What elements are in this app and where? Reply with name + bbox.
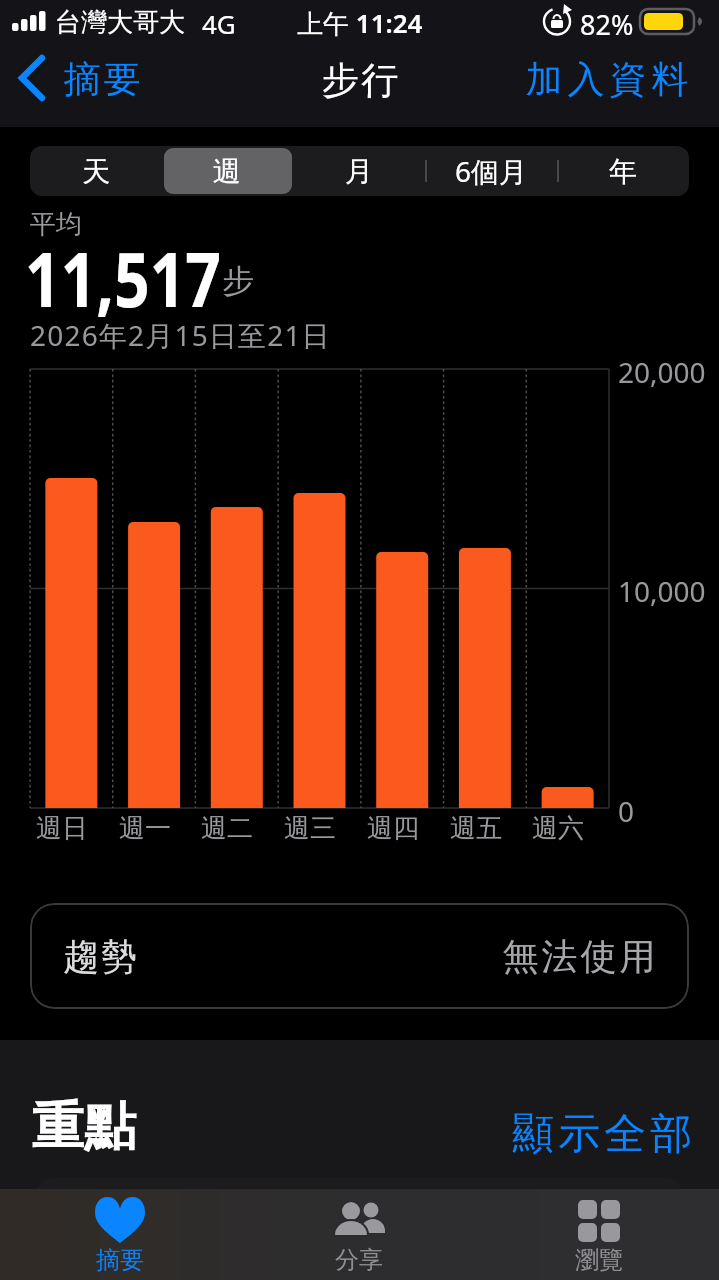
staticText: 82% — [580, 6, 634, 43]
staticText: 趨勢 — [62, 934, 138, 979]
staticText: 週一 — [119, 812, 171, 845]
staticText: 週四 — [367, 812, 419, 845]
staticText: 無法使用 — [501, 934, 657, 979]
staticText: 瀏覽 — [575, 1245, 623, 1275]
staticText: 摘要 — [96, 1245, 144, 1275]
staticText: 0 — [618, 792, 635, 830]
staticText: 20,000 — [618, 353, 706, 391]
staticText: 平均 — [30, 208, 82, 241]
staticText: 週二 — [201, 812, 253, 845]
staticText: 分享 — [335, 1245, 383, 1275]
staticText: 10,000 — [618, 572, 706, 610]
staticText: 台灣大哥大 — [55, 6, 185, 39]
staticText: 6個月 — [455, 152, 528, 190]
button[interactable]: 顯示全部 — [510, 1108, 694, 1161]
button[interactable]: 天 — [30, 146, 161, 196]
staticText: 摘要 — [62, 56, 142, 103]
staticText: 年 — [609, 154, 637, 189]
button[interactable]: 年 — [557, 146, 689, 196]
button[interactable]: 瀏覽 — [479, 1189, 719, 1280]
staticText: 步行 — [321, 57, 399, 104]
staticText: 週六 — [532, 812, 584, 845]
button[interactable]: 分享 — [239, 1189, 479, 1280]
staticText: 月 — [345, 154, 373, 189]
staticText: 週日 — [36, 812, 88, 845]
button[interactable]: 趨勢 — [30, 903, 689, 1009]
staticText: 2026年2月15日至21日 — [30, 316, 331, 354]
staticText: 重點 — [32, 1094, 136, 1160]
staticText: 週五 — [450, 812, 502, 845]
button[interactable]: 摘要 — [0, 1189, 239, 1280]
staticText: 週三 — [284, 812, 336, 845]
staticText: 週 — [213, 154, 241, 189]
button[interactable]: 週 — [161, 146, 293, 196]
button[interactable]: 摘要 — [12, 52, 146, 107]
staticText: 步 — [222, 261, 254, 301]
button[interactable]: 月 — [293, 146, 425, 196]
staticText: 11,517 — [25, 226, 222, 330]
button[interactable]: 6個月 — [425, 146, 557, 196]
staticText: 4G — [202, 6, 236, 41]
button[interactable]: 加入資料 — [523, 56, 691, 103]
staticText: 上午 11:24 — [297, 5, 423, 41]
staticText: 天 — [82, 154, 110, 189]
